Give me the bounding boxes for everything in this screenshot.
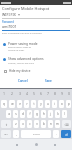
staticText: 1 [3, 92, 5, 96]
button[interactable]: u [45, 100, 50, 108]
button[interactable]: i [52, 100, 57, 108]
staticText: Channel, security and more [8, 62, 34, 65]
button[interactable]: Cancel [16, 78, 30, 84]
button[interactable]: 7 [45, 90, 50, 98]
staticText: 2 [11, 92, 13, 96]
button[interactable]: e [17, 100, 22, 108]
staticText: l [64, 112, 65, 116]
button[interactable]: a [6, 110, 11, 118]
staticText: WIFI FIX [2, 12, 16, 17]
button[interactable]: Show advanced options [3, 57, 44, 65]
staticText: 5 [33, 92, 35, 96]
staticText: 0 [68, 92, 70, 96]
staticText: Show advanced options [8, 57, 44, 61]
staticText: 6 [40, 92, 42, 96]
staticText: t [33, 102, 35, 106]
staticText: o [61, 102, 63, 106]
button[interactable]: 8 [52, 90, 57, 98]
staticText: b [43, 122, 45, 126]
staticText: f [29, 112, 31, 116]
staticText: z [15, 122, 17, 126]
button[interactable]: v [34, 120, 39, 128]
button[interactable]: x [20, 120, 25, 128]
staticText: English [33, 133, 40, 136]
button[interactable]: p [66, 100, 71, 108]
button[interactable]: y [38, 100, 43, 108]
staticText: j [50, 112, 51, 116]
staticText: x [22, 122, 24, 126]
staticText: n [50, 122, 52, 126]
button[interactable]: WIFI FIX [2, 12, 20, 17]
button[interactable]: 3 [17, 90, 22, 98]
button[interactable]: 2 [9, 90, 15, 98]
staticText: i [54, 102, 55, 106]
staticText: ⇧ [5, 123, 8, 126]
button[interactable]: s [13, 110, 18, 118]
staticText: Power saving mode [8, 42, 38, 46]
button[interactable]: j [48, 110, 53, 118]
button[interactable]: w [9, 100, 15, 108]
button[interactable]: Power saving mode [3, 42, 38, 52]
staticText: 9 [61, 92, 63, 96]
staticText: 8 [54, 92, 56, 96]
staticText: 7 [47, 92, 49, 96]
staticText: Password [2, 20, 14, 24]
button[interactable]: 9 [59, 90, 64, 98]
button[interactable]: 1 [1, 90, 7, 98]
staticText: s [15, 112, 17, 116]
button[interactable]: b [41, 120, 46, 128]
button[interactable]: 4 [24, 90, 29, 98]
button[interactable]: q [1, 100, 7, 108]
staticText: e [19, 102, 21, 106]
button[interactable]: t [31, 100, 36, 108]
button[interactable]: z [13, 120, 18, 128]
staticText: Save [45, 79, 52, 83]
staticText: g [36, 112, 38, 116]
staticText: !#1 [4, 133, 8, 136]
button[interactable]: d [20, 110, 25, 118]
staticText: Configure Mobile Hotspot [2, 6, 50, 11]
button[interactable]: !#1 [1, 130, 11, 138]
button[interactable]: . [53, 130, 59, 138]
button[interactable]: o [59, 100, 64, 108]
button[interactable]: f [27, 110, 32, 118]
button[interactable]: Shift [1, 120, 11, 128]
button[interactable]: Save [43, 78, 54, 84]
button[interactable]: Hide my device [4, 69, 31, 73]
staticText: k [57, 112, 59, 116]
staticText: Cancel [18, 79, 28, 83]
staticText: v [36, 122, 38, 126]
button[interactable]: English [21, 130, 51, 138]
button[interactable]: , [13, 130, 19, 138]
button[interactable]: Backspace [62, 120, 71, 128]
staticText: ⌫ [64, 123, 69, 126]
staticText: 4 [26, 92, 28, 96]
staticText: ami7001 [2, 24, 17, 29]
button[interactable]: 0 [66, 90, 71, 98]
staticText: r [26, 102, 28, 106]
button[interactable]: n [48, 120, 53, 128]
button[interactable]: 6 [38, 90, 43, 98]
staticText: c [29, 122, 31, 126]
button[interactable]: r [24, 100, 29, 108]
staticText: ⏎ [65, 133, 68, 136]
staticText: m [56, 122, 59, 126]
button[interactable]: Home [35, 143, 38, 146]
button[interactable]: m [55, 120, 60, 128]
staticText: Hide my device [9, 69, 31, 73]
button[interactable]: l [62, 110, 67, 118]
staticText: d [22, 112, 24, 116]
staticText: Enter a password of at least 8 character… [2, 32, 42, 35]
button[interactable]: c [27, 120, 32, 128]
staticText: a [8, 112, 10, 116]
staticText: y [40, 102, 42, 106]
button[interactable]: 5 [31, 90, 36, 98]
staticText: q [3, 102, 5, 106]
button[interactable]: g [34, 110, 39, 118]
staticText: 3 [19, 92, 21, 96]
button[interactable]: k [55, 110, 60, 118]
button[interactable]: Enter [61, 130, 71, 138]
button[interactable]: h [41, 110, 46, 118]
